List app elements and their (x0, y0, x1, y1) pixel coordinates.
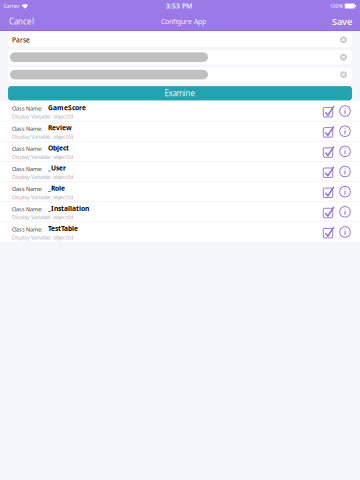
button[interactable]: Clear text (337, 33, 350, 46)
button[interactable]: Class Name: (0, 121, 360, 141)
button[interactable]: Info for Object (339, 145, 351, 157)
staticText: objectId (53, 214, 73, 221)
staticText: Display Variable: (12, 113, 51, 120)
button[interactable]: Save (324, 11, 360, 32)
button[interactable]: Info for Review (339, 125, 351, 137)
button[interactable]: Class Name: (0, 141, 360, 162)
staticText: 100% (329, 2, 342, 10)
staticText: Save (332, 15, 352, 28)
button[interactable]: Enable GameScore (323, 104, 335, 117)
button[interactable]: Class Name: (0, 101, 360, 121)
staticText: Display Variable: (12, 234, 51, 241)
staticText: Carrier (3, 2, 19, 10)
staticText: Configure App (161, 17, 206, 26)
staticText: 3:53 PM (166, 2, 192, 10)
staticText: TestTable (48, 224, 78, 233)
button[interactable]: Enable _Role (323, 185, 335, 198)
staticText: objectId (53, 153, 73, 160)
staticText: Class Name: (12, 125, 42, 132)
staticText: objectId (53, 173, 73, 181)
staticText: Display Variable: (12, 194, 51, 201)
button[interactable]: Clear text (337, 51, 350, 64)
staticText: Cancel (9, 16, 34, 27)
button[interactable]: Class Name: (0, 202, 360, 222)
staticText: Class Name: (12, 206, 42, 213)
staticText: objectId (53, 133, 73, 140)
staticText: Class Name: (12, 145, 42, 152)
staticText: GameScore (48, 103, 86, 112)
staticText: _User (48, 164, 66, 172)
staticText: Class Name: (12, 185, 42, 193)
button[interactable]: Enable _Installation (323, 205, 335, 218)
button[interactable]: Info for _User (339, 165, 351, 177)
staticText: Object (48, 143, 69, 152)
button[interactable]: Enable Review (323, 125, 335, 138)
button[interactable]: Class Name: (0, 222, 360, 242)
staticText: Parse (12, 35, 30, 44)
button[interactable]: Info for _Role (339, 186, 351, 198)
staticText: Class Name: (12, 165, 42, 172)
staticText: objectId (53, 194, 73, 201)
staticText: _Installation (48, 204, 89, 213)
staticText: Review (48, 123, 72, 132)
button[interactable]: Info for TestTable (339, 226, 351, 238)
button[interactable]: Class Name: (0, 182, 360, 202)
button[interactable]: Enable TestTable (323, 225, 335, 238)
button[interactable]: Info for GameScore (339, 105, 351, 117)
button[interactable]: Clear text (337, 68, 350, 81)
button[interactable]: Enable Object (323, 145, 335, 158)
staticText: Examine (164, 88, 195, 98)
button[interactable]: Enable _User (323, 165, 335, 178)
staticText: objectId (53, 113, 73, 120)
staticText: objectId (53, 234, 73, 241)
staticText: _Role (48, 184, 65, 193)
staticText: Display Variable: (12, 133, 51, 140)
staticText: Display Variable: (12, 173, 51, 181)
button[interactable]: Cancel (0, 12, 43, 31)
button[interactable]: Class Name: (0, 162, 360, 182)
button[interactable]: Info for _Installation (339, 206, 351, 218)
staticText: Display Variable: (12, 153, 51, 160)
staticText: Class Name: (12, 226, 42, 233)
staticText: Display Variable: (12, 214, 51, 221)
staticText: Class Name: (12, 105, 42, 112)
button[interactable]: Examine (8, 86, 352, 100)
